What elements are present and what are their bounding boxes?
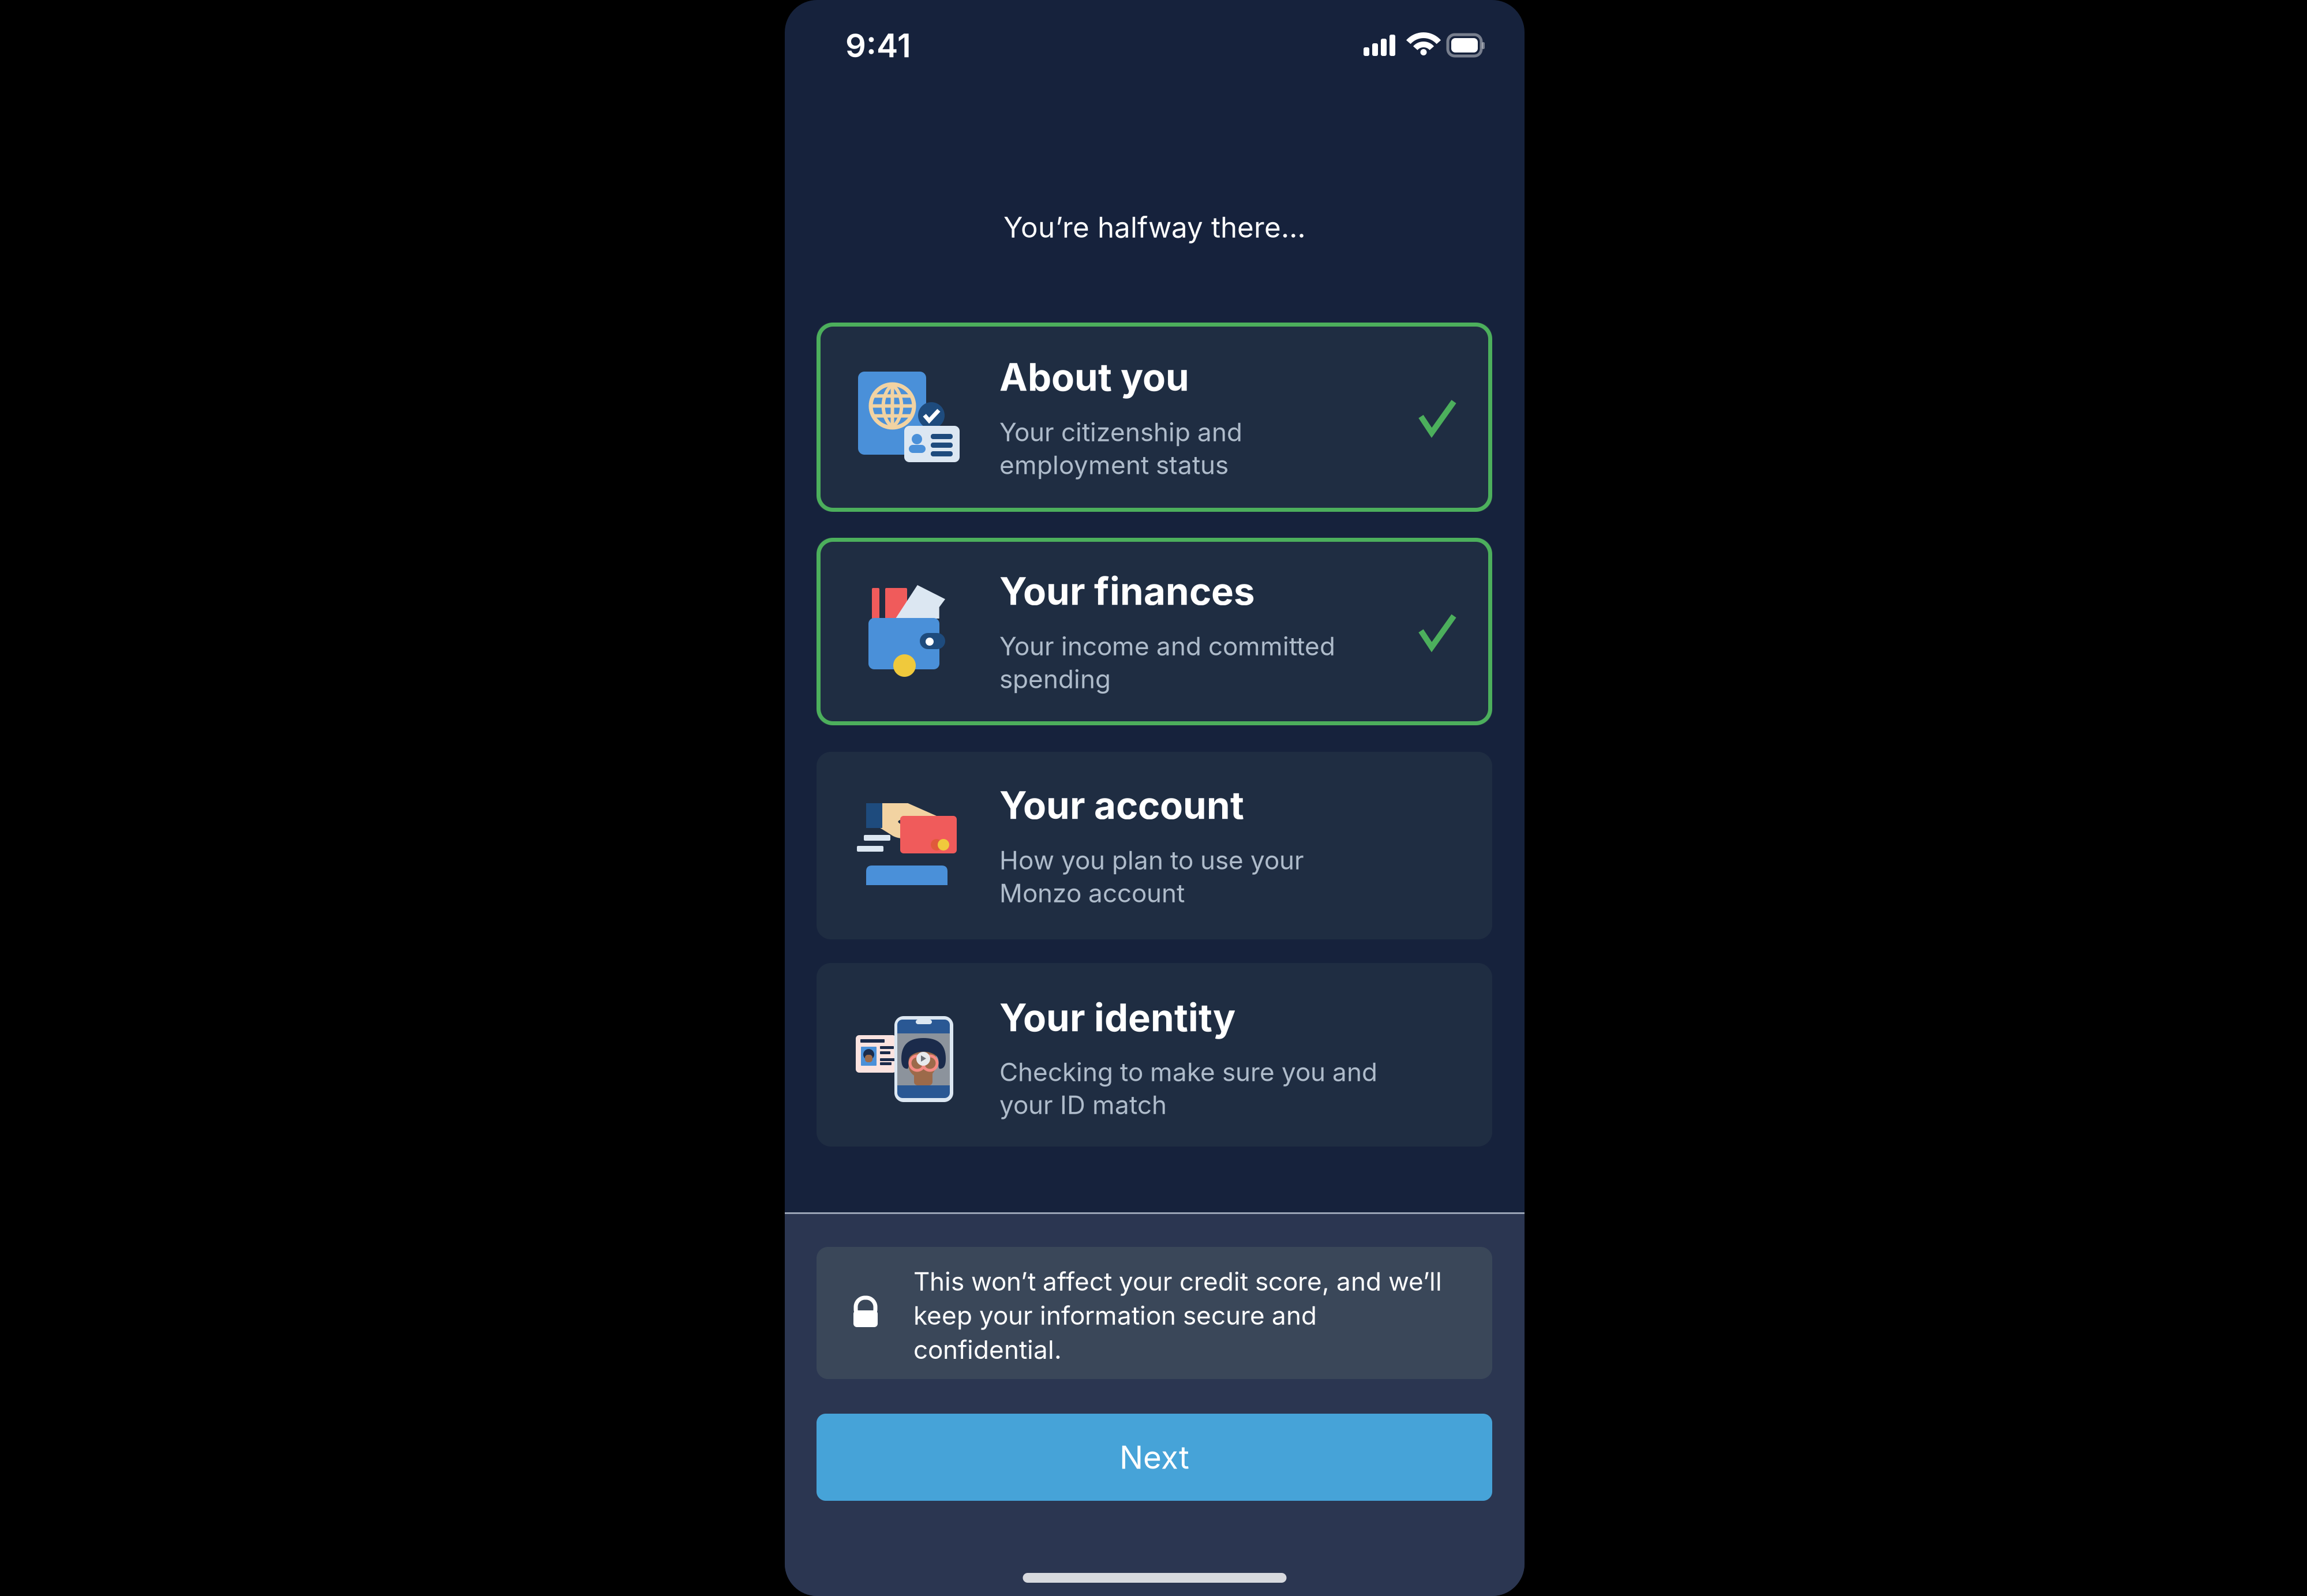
staticText: How you plan to use your Monzo account bbox=[999, 845, 1304, 908]
button[interactable]: About you bbox=[817, 323, 1492, 512]
button[interactable]: Your finances bbox=[817, 538, 1492, 725]
button[interactable]: Your account bbox=[817, 752, 1492, 939]
staticText: Your income and committed spending bbox=[999, 631, 1335, 694]
staticText: 9:41 bbox=[845, 26, 911, 65]
staticText: This won’t affect your credit score, and… bbox=[913, 1266, 1442, 1365]
staticText: Checking to make sure you and your ID ma… bbox=[999, 1056, 1377, 1120]
staticText: Your identity bbox=[999, 995, 1235, 1040]
staticText: Your finances bbox=[999, 568, 1255, 614]
staticText: Your citizenship and employment status bbox=[999, 417, 1242, 480]
staticText: Your account bbox=[999, 782, 1244, 828]
staticText: You’re halfway there… bbox=[1003, 210, 1306, 244]
staticText: Next bbox=[1119, 1438, 1189, 1476]
button[interactable]: Next bbox=[817, 1414, 1492, 1501]
staticText: About you bbox=[999, 354, 1189, 400]
button[interactable]: Your identity bbox=[817, 963, 1492, 1147]
